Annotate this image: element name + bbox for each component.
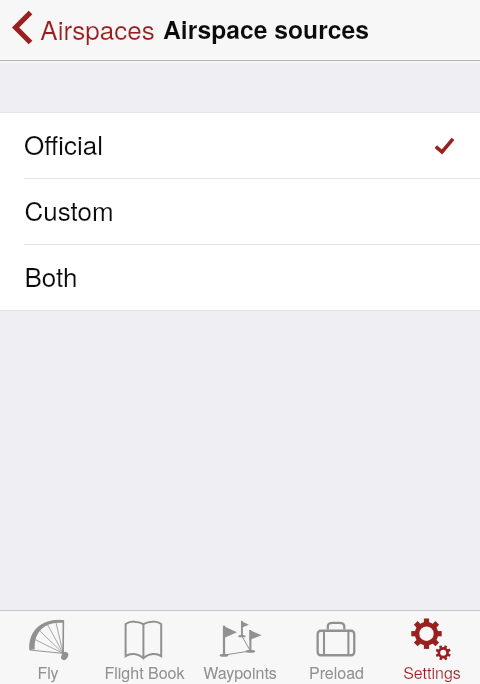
staticText: Official: [24, 125, 103, 162]
staticText: Both: [24, 257, 78, 294]
button[interactable]: Flight Book: [96, 610, 192, 684]
button[interactable]: Official: [0, 113, 480, 178]
button[interactable]: Waypoints: [192, 610, 288, 684]
staticText: Airspace sources: [163, 11, 369, 46]
button[interactable]: Back to Airspaces: [0, 4, 157, 56]
button[interactable]: Preload: [288, 610, 384, 684]
staticText: Settings: [403, 661, 461, 684]
button[interactable]: Custom: [0, 179, 480, 244]
staticText: Fly: [37, 661, 59, 684]
button[interactable]: Fly: [0, 610, 96, 684]
staticText: Preload: [309, 661, 364, 684]
staticText: Custom: [24, 191, 114, 228]
button[interactable]: Settings: [384, 610, 480, 684]
button[interactable]: Both: [0, 245, 480, 310]
staticText: Airspaces: [40, 10, 155, 47]
staticText: Flight Book: [104, 661, 185, 684]
staticText: Waypoints: [203, 661, 277, 684]
